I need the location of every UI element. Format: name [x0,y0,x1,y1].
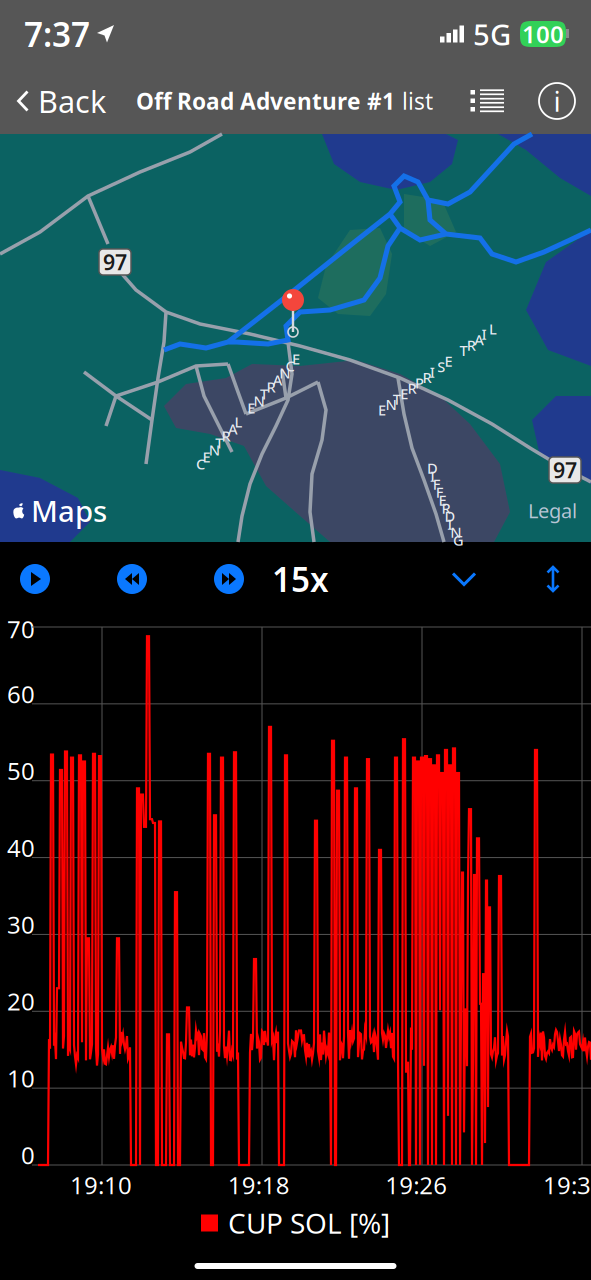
staticText: Back [38,81,106,121]
staticText: E [292,349,300,368]
staticText: 60 [7,678,35,710]
staticText: 97 [103,248,127,276]
staticText: G [453,530,464,550]
staticText: i [553,82,560,120]
staticText: Maps [31,491,107,530]
staticText: 70 [7,613,35,645]
staticText: I [430,466,435,486]
staticText: R [266,377,275,396]
staticText: C [286,356,295,375]
staticText: 19:18 [228,1169,290,1201]
staticText: L [234,412,242,431]
staticText: N [450,522,461,542]
staticText: R [408,378,417,398]
staticText: I [482,324,487,344]
staticText: 30 [7,908,35,940]
staticText: 97 [553,456,577,484]
button[interactable]: Resize [533,553,573,605]
staticText: F [433,474,441,494]
staticText: E [247,398,255,417]
staticText: CUP SOL [%] [228,1204,390,1242]
staticText: I [430,362,435,382]
staticText: E [202,447,210,466]
staticText: Legal [528,497,577,524]
staticText: R [222,426,231,445]
staticText: 15x [272,557,329,601]
button[interactable]: Fast forward [208,558,250,600]
staticText: L [489,319,497,338]
staticText: N [385,395,396,414]
button[interactable]: Back [0,71,110,131]
staticText: A [228,419,238,438]
staticText: 100 [522,18,564,50]
staticText: 10 [7,1062,35,1094]
staticText: D [444,506,455,526]
staticText: N [209,440,220,459]
staticText: E [378,400,386,419]
staticText: S [437,357,445,376]
staticText: T [459,341,467,360]
staticText: 5G [473,14,511,53]
staticText: 20 [7,985,35,1017]
staticText: 50 [7,755,35,787]
staticText: F [436,482,444,502]
staticText: T [260,384,268,403]
staticText: D [427,458,438,478]
staticText: A [474,330,484,349]
staticText: 19:26 [385,1169,447,1201]
staticText: A [273,370,283,389]
staticText: Off Road Adventure #1 [136,86,395,116]
staticText: R [422,368,431,387]
staticText: 40 [7,832,35,863]
staticText: R [441,498,450,518]
staticText: 7:37 [24,12,90,56]
staticText: 19:3 [543,1169,591,1201]
staticText: E [400,384,408,403]
staticText: N [279,363,290,382]
staticText: N [254,391,265,410]
staticText: 19:10 [70,1169,132,1201]
button[interactable]: Play [14,558,56,600]
staticText: list [402,86,433,116]
button[interactable]: Rewind [111,558,153,600]
staticText: P [415,373,424,392]
button[interactable]: Info [533,73,591,129]
staticText: E [439,490,447,510]
staticText: R [467,335,476,355]
button[interactable]: List [458,77,517,125]
staticText: T [393,389,401,409]
staticText: I [447,514,452,534]
staticText [241,405,245,424]
staticText: E [445,351,453,371]
staticText [452,346,456,365]
staticText: T [215,433,223,452]
button[interactable]: Collapse [439,557,489,600]
staticText: C [196,454,205,473]
staticText: 0 [21,1139,35,1171]
